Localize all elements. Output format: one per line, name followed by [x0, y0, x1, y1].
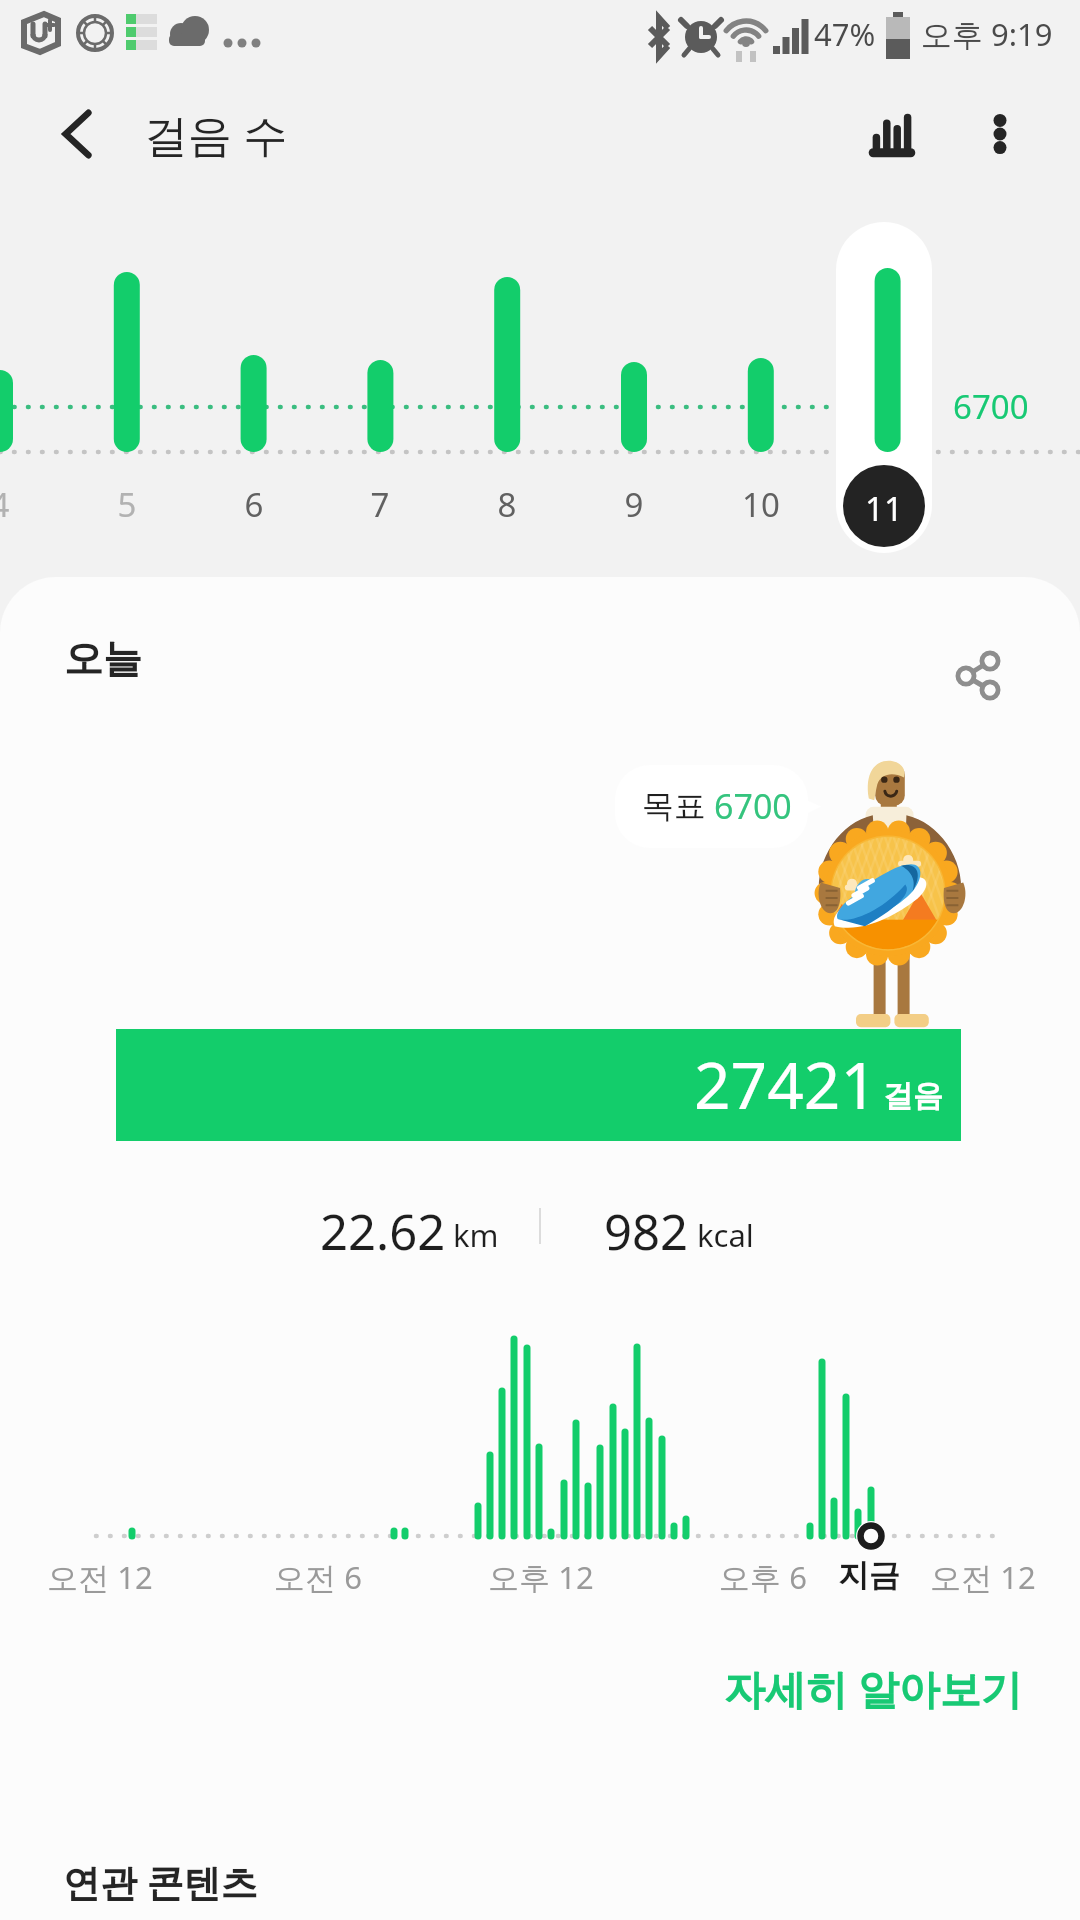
staticText: 47%: [814, 13, 876, 55]
staticText: kcal: [697, 1214, 754, 1256]
staticText: 11: [836, 486, 932, 531]
button[interactable]: Day 11, selected: [836, 222, 932, 553]
button[interactable]: 9: [574, 218, 694, 558]
button[interactable]: 5: [67, 218, 187, 558]
staticText: 10: [701, 482, 821, 527]
button[interactable]: 6: [194, 218, 314, 558]
staticText: 6700: [714, 783, 792, 829]
staticText: 오후 12: [441, 1556, 641, 1598]
staticText: 9: [574, 482, 694, 527]
staticText: 오늘: [64, 634, 142, 683]
staticText: 오전 12: [883, 1556, 1080, 1598]
staticText: 4: [0, 482, 60, 527]
staticText: 연관 콘텐츠: [63, 1856, 258, 1907]
staticText: 6700: [953, 384, 1029, 429]
staticText: 지금: [769, 1556, 969, 1595]
button[interactable]: 자세히 알아보기: [724, 1660, 1022, 1716]
staticText: 오후 9:19: [921, 13, 1053, 55]
button[interactable]: 10: [701, 218, 821, 558]
button[interactable]: Hourly step activity chart: [0, 1330, 1080, 1630]
button[interactable]: More options: [960, 94, 1040, 174]
staticText: 오전 12: [0, 1556, 200, 1598]
button[interactable]: Back: [42, 94, 122, 174]
staticText: 6: [194, 482, 314, 527]
button[interactable]: 27421: [116, 1029, 961, 1141]
button[interactable]: Chart view: [856, 94, 936, 174]
staticText: km: [453, 1214, 499, 1256]
staticText: 오후 6: [663, 1556, 863, 1598]
staticText: 5: [67, 482, 187, 527]
staticText: 8: [447, 482, 567, 527]
button[interactable]: 4: [0, 218, 60, 558]
button[interactable]: 7: [320, 218, 440, 558]
staticText: 7: [320, 482, 440, 527]
staticText: 982: [604, 1198, 689, 1265]
staticText: 22.62: [320, 1198, 446, 1265]
staticText: 걸음: [883, 1077, 943, 1115]
staticText: 걸음 수: [144, 104, 288, 164]
button[interactable]: Share: [939, 635, 1019, 715]
staticText: 오전 6: [218, 1556, 418, 1598]
staticText: 27421: [694, 1041, 878, 1128]
staticText: 목표: [642, 786, 706, 826]
button[interactable]: 8: [447, 218, 567, 558]
staticText: 자세히 알아보기: [724, 1660, 1022, 1716]
